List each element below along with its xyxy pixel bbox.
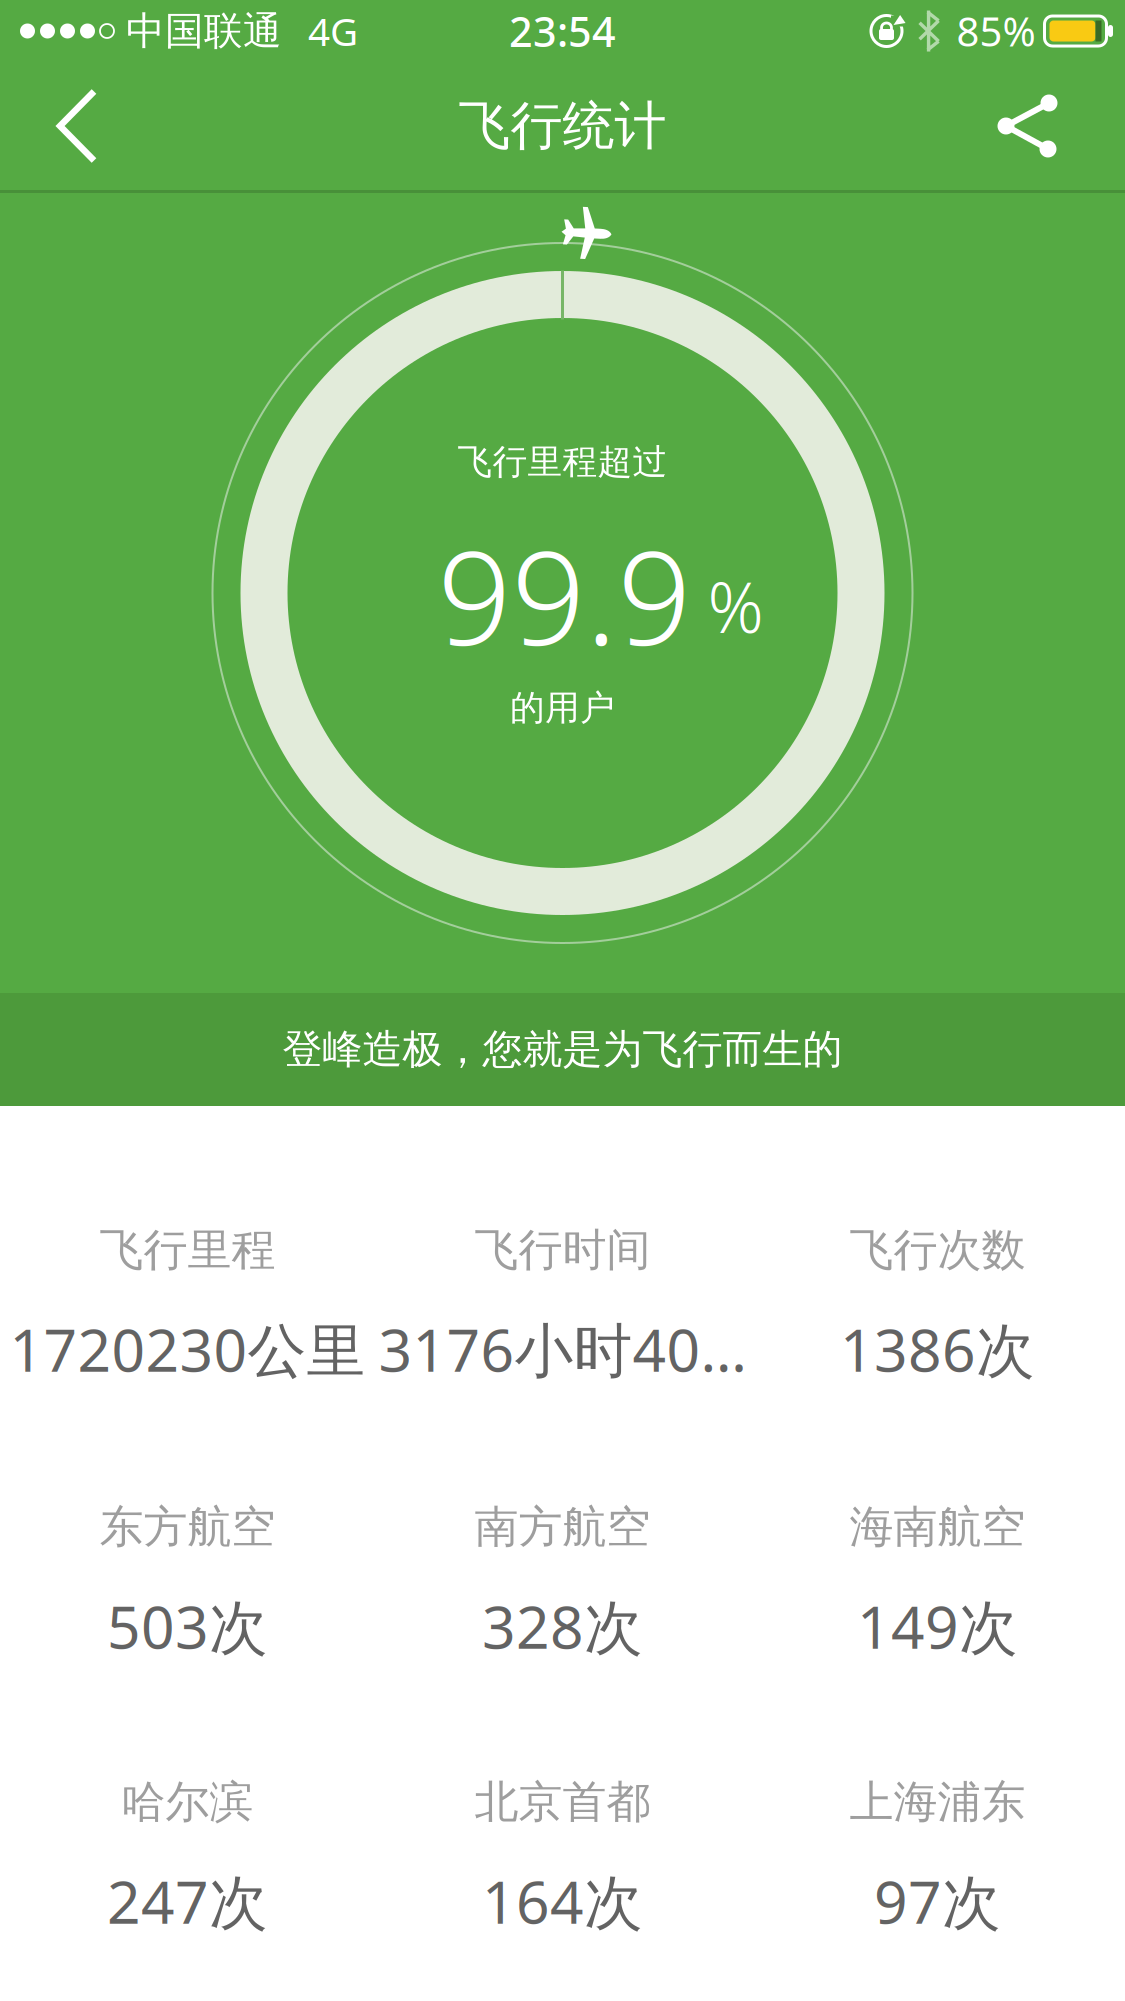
staticText: 飞行统计 bbox=[458, 94, 666, 158]
button[interactable] bbox=[0, 91, 94, 160]
staticText: 3176小时40… bbox=[378, 1310, 746, 1388]
staticText: 97次 bbox=[874, 1862, 1001, 1940]
staticText: 99.9 bbox=[437, 509, 691, 681]
staticText: 503次 bbox=[107, 1587, 268, 1665]
staticText: 南方航空 bbox=[474, 1500, 650, 1554]
staticText: 飞行时间 bbox=[474, 1223, 650, 1277]
staticText: 飞行里程超过 bbox=[457, 441, 667, 483]
staticText: 海南航空 bbox=[849, 1500, 1025, 1554]
staticText: 23:54 bbox=[509, 4, 616, 58]
staticText: 328次 bbox=[482, 1587, 643, 1665]
staticText: 飞行里程 bbox=[99, 1223, 275, 1277]
staticText: 中国联通 bbox=[126, 7, 282, 55]
staticText: 85% bbox=[956, 4, 1035, 57]
staticText: 247次 bbox=[107, 1862, 268, 1940]
staticText: 1386次 bbox=[840, 1310, 1035, 1388]
staticText: 4G bbox=[308, 5, 358, 57]
staticText: % bbox=[707, 560, 763, 652]
staticText: 哈尔滨 bbox=[121, 1775, 253, 1829]
staticText: 1720230公里 bbox=[9, 1310, 365, 1388]
staticText: 149次 bbox=[857, 1587, 1018, 1665]
button[interactable] bbox=[997, 94, 1125, 158]
staticText: 上海浦东 bbox=[849, 1775, 1025, 1829]
staticText: 北京首都 bbox=[474, 1775, 650, 1829]
staticText: 登峰造极，您就是为飞行而生的 bbox=[282, 1025, 842, 1074]
staticText: 飞行次数 bbox=[849, 1223, 1025, 1277]
staticText: 的用户 bbox=[510, 687, 615, 729]
staticText: 164次 bbox=[482, 1862, 643, 1940]
staticText: 东方航空 bbox=[99, 1500, 275, 1554]
